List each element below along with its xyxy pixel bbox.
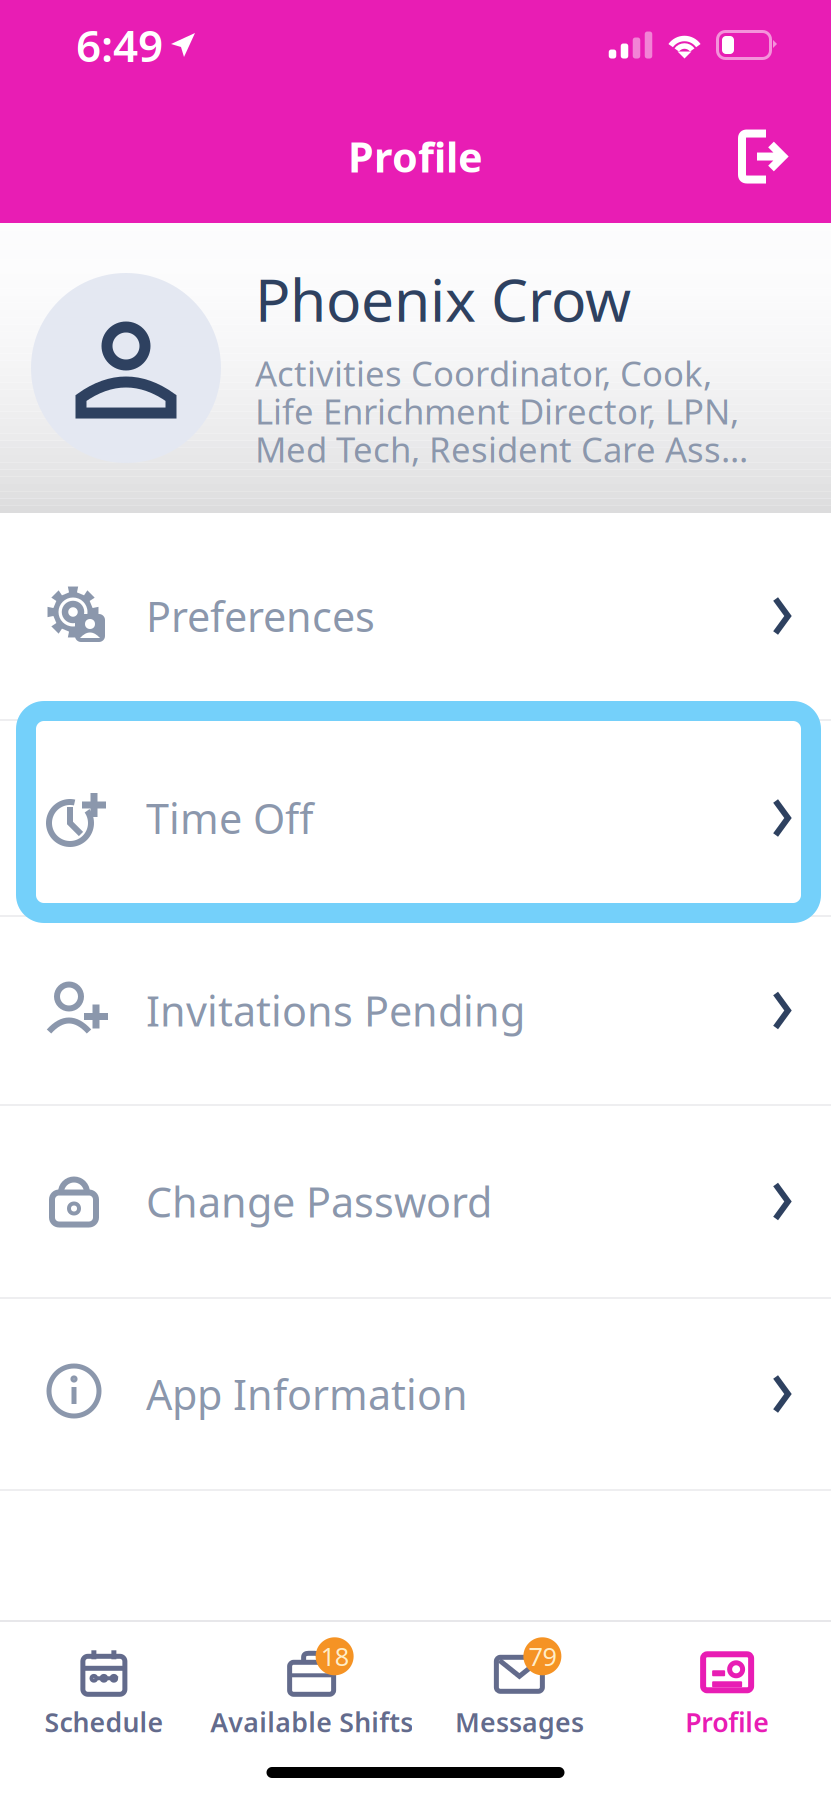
staticText: Invitations Pending (146, 983, 525, 1038)
staticText: Messages (455, 1704, 584, 1740)
staticText: Profile (348, 129, 483, 184)
staticText: Time Off (146, 791, 313, 845)
button[interactable]: Time Off (0, 721, 831, 915)
staticText: Available Shifts (210, 1704, 413, 1740)
button[interactable]: 18 (208, 1649, 416, 1740)
button[interactable]: Profile (623, 1649, 831, 1740)
staticText: App Information (146, 1367, 468, 1421)
button[interactable]: Change Password (0, 1106, 831, 1297)
staticText: Profile (685, 1704, 769, 1740)
staticText: 18 (321, 1639, 349, 1673)
staticText: 79 (528, 1639, 556, 1673)
staticText: 6:49 (76, 16, 163, 74)
button[interactable]: Schedule (0, 1649, 208, 1740)
button[interactable]: Phoenix Crow (0, 223, 831, 513)
staticText: Schedule (44, 1704, 163, 1740)
staticText: Preferences (146, 589, 375, 643)
button[interactable]: Invitations Pending (0, 917, 831, 1104)
staticText: Life Enrichment Director, LPN, (255, 388, 739, 434)
button[interactable]: App Information (0, 1299, 831, 1489)
button[interactable]: Log out (723, 116, 803, 196)
staticText: Activities Coordinator, Cook, (255, 350, 712, 396)
button[interactable]: 79 (415, 1649, 623, 1740)
button[interactable]: Preferences (0, 513, 831, 719)
staticText: Change Password (146, 1174, 492, 1229)
staticText: Med Tech, Resident Care Ass... (255, 426, 748, 472)
staticText: Phoenix Crow (255, 260, 631, 338)
